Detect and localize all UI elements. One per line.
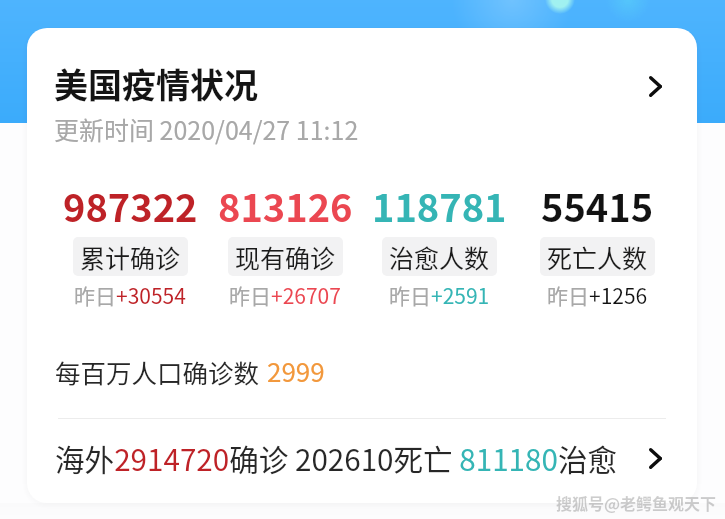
staticText: 昨日+1256 (547, 280, 648, 310)
staticText: 美国疫情状况 (54, 59, 258, 108)
staticText: 118781 (372, 178, 507, 233)
staticText: 治愈人数 (389, 239, 490, 275)
staticText: 海外2914720确诊 202610死亡 811180治愈 (55, 437, 618, 480)
other: 查看海外疫情详情 (635, 438, 675, 478)
staticText: 搜狐号@老鳄鱼观天下 (556, 491, 717, 514)
staticText: 现有确诊 (235, 239, 336, 275)
staticText: 累计确诊 (80, 239, 181, 275)
button[interactable]: 海外2914720确诊 202610死亡 811180治愈 (27, 428, 697, 490)
staticText: 更新时间 2020/04/27 11:12 (54, 111, 359, 147)
staticText: 昨日+2591 (389, 280, 490, 310)
button[interactable]: 美国疫情状况 (27, 53, 697, 148)
staticText: 813126 (218, 178, 353, 233)
staticText: 死亡人数 (547, 239, 648, 275)
staticText: 987322 (63, 178, 198, 233)
staticText: 2999 (267, 352, 325, 390)
staticText: 55415 (541, 178, 654, 233)
staticText: 每百万人口确诊数 (55, 353, 260, 390)
other: 查看美国疫情详情 (635, 66, 675, 106)
staticText: 昨日+30554 (74, 280, 186, 310)
staticText: 昨日+26707 (229, 280, 341, 310)
